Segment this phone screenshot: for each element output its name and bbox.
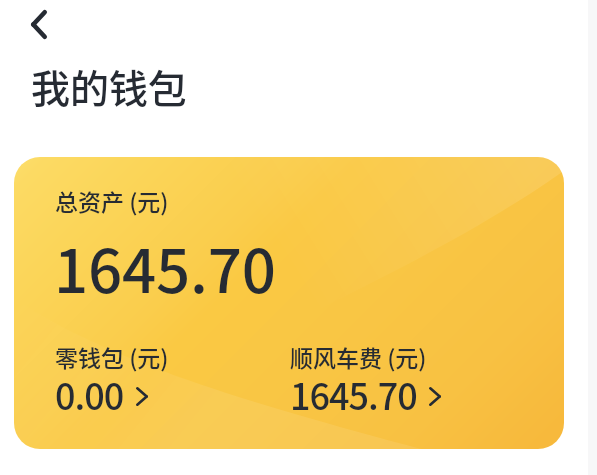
staticText: 1645.70 <box>290 368 417 420</box>
staticText: 1645.70 <box>54 223 276 310</box>
staticText: 我的钱包 <box>31 58 188 114</box>
staticText: 顺风车费 (元) <box>290 340 427 373</box>
button[interactable]: 零钱包 (元) <box>55 340 169 425</box>
staticText: 0.00 <box>55 368 124 420</box>
button[interactable]: 总资产 (元) <box>14 157 564 449</box>
button[interactable]: 顺风车费 (元) <box>290 340 441 425</box>
button[interactable]: Back <box>16 1 62 47</box>
staticText: 零钱包 (元) <box>55 340 169 373</box>
staticText: 总资产 (元) <box>55 184 169 217</box>
